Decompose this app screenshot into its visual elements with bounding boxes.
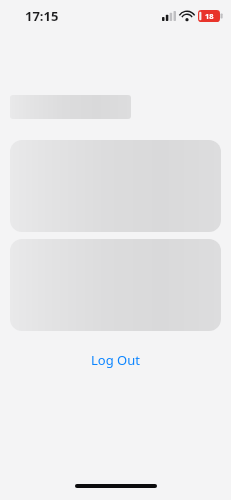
staticText: 18 <box>205 11 214 21</box>
button[interactable]: Log Out <box>10 348 221 372</box>
staticText: 17:15 <box>25 7 59 25</box>
other: Battery 18 percent <box>198 10 223 22</box>
button[interactable] <box>10 140 221 232</box>
staticText: Log Out <box>91 351 140 369</box>
button[interactable] <box>10 239 221 331</box>
